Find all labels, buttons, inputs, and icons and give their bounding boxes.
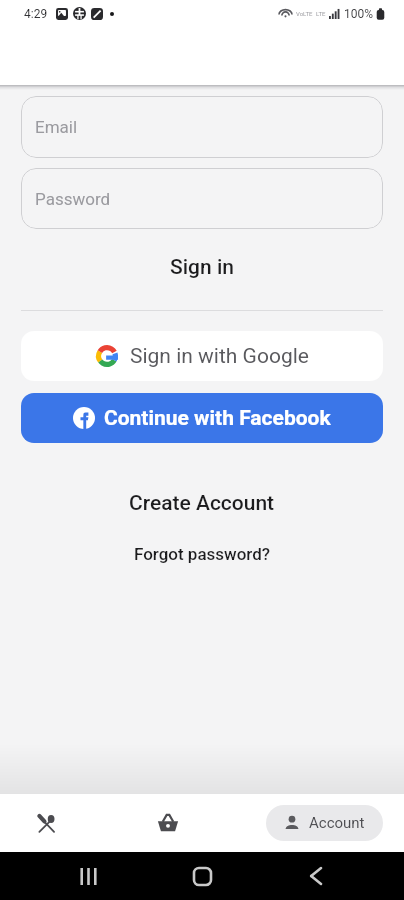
button[interactable]: Basket [92, 794, 244, 852]
button[interactable]: Sign in with Google [21, 331, 383, 381]
staticText: Create Account [129, 491, 275, 516]
button[interactable]: Menu [0, 794, 92, 852]
button[interactable]: Continue with Facebook [21, 393, 383, 443]
staticText: 100% [344, 7, 374, 21]
staticText: Sign in [170, 255, 234, 280]
button[interactable]: Create Account [0, 479, 404, 527]
staticText: Continue with Facebook [104, 406, 331, 431]
button[interactable]: Recents [49, 852, 127, 900]
staticText: 4:29 [24, 7, 48, 21]
button[interactable]: Account [266, 805, 383, 841]
staticText: Account [309, 814, 365, 832]
staticText: VoLTE [296, 10, 313, 17]
button[interactable]: Sign in [0, 243, 404, 291]
button[interactable]: Back [277, 852, 355, 900]
staticText: LTE [316, 10, 326, 17]
staticText: Email [35, 117, 78, 137]
staticText: Sign in with Google [130, 344, 309, 369]
staticText: Password [35, 189, 111, 209]
button[interactable]: Home [163, 852, 241, 900]
button[interactable]: Email [21, 96, 383, 158]
button[interactable]: Password [21, 168, 383, 229]
staticText: Forgot password? [134, 544, 271, 564]
button[interactable]: Forgot password? [0, 536, 404, 572]
